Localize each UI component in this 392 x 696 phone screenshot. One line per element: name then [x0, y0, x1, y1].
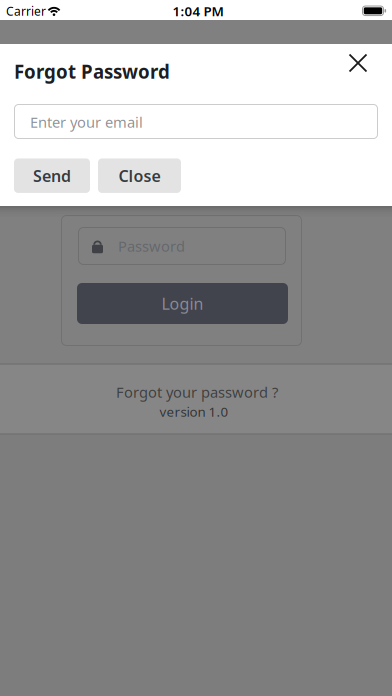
staticText: Login: [161, 293, 203, 314]
staticText: Close: [118, 165, 160, 186]
staticText: Send: [33, 165, 71, 186]
staticText: Forgot Password: [14, 59, 170, 84]
button[interactable]: Send: [14, 158, 90, 193]
button[interactable]: Close: [98, 158, 181, 193]
staticText: Enter your email: [30, 112, 143, 132]
button[interactable]: Forgot your password ?: [116, 382, 278, 402]
staticText: 1:04 PM: [172, 2, 223, 20]
staticText: version 1.0: [159, 403, 228, 420]
staticText: Carrier: [6, 3, 46, 19]
staticText: Password: [118, 236, 185, 256]
button[interactable]: Login: [77, 283, 288, 324]
button[interactable]: Close: [343, 48, 373, 78]
staticText: Forgot your password ?: [116, 382, 278, 402]
